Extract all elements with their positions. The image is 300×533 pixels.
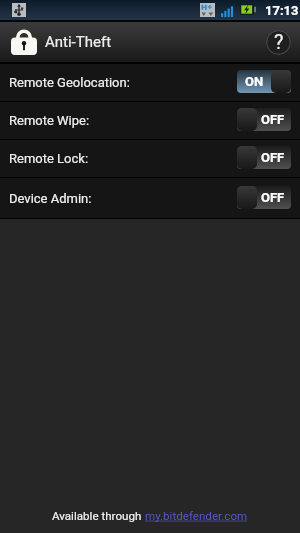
staticText: Remote Geolocation: [9,75,130,90]
button[interactable] [237,70,291,93]
button[interactable] [237,146,291,169]
staticText: ? [274,30,284,53]
button[interactable] [237,186,291,209]
staticText: ON [245,74,264,89]
staticText: OFF [261,150,285,165]
button[interactable]: Device Admin: [0,178,300,218]
button[interactable] [237,108,291,131]
button[interactable]: Help [266,30,291,55]
staticText: Remote Lock: [9,151,89,166]
button[interactable]: my.bitdefender.com [145,509,248,523]
staticText: Remote Wipe: [9,113,90,128]
staticText: Anti-Theft [45,33,112,51]
button[interactable]: Remote Lock: [0,140,300,177]
button[interactable]: Remote Wipe: [0,102,300,139]
button[interactable]: Remote Geolocation: [0,64,300,101]
staticText: Available through [52,509,145,523]
staticText: Device Admin: [9,191,92,206]
staticText: 17:13 [265,3,299,18]
staticText: OFF [261,190,285,205]
staticText: OFF [261,112,285,127]
